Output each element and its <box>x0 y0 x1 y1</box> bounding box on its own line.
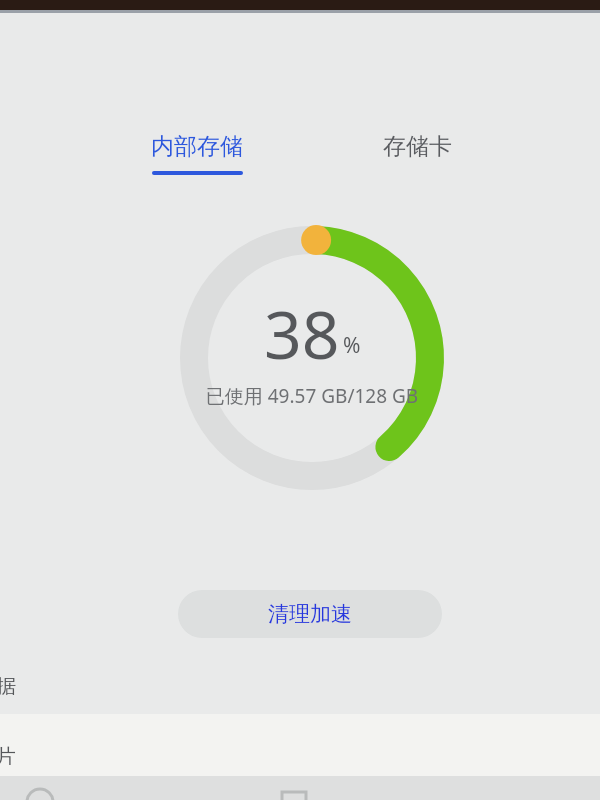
staticText: 存储卡 <box>383 132 452 161</box>
button[interactable]: 清理加速 <box>178 590 442 638</box>
staticText: 已使用 49.57 GB/128 GB <box>198 383 426 409</box>
staticText: 内部存储 <box>151 132 243 161</box>
button[interactable]: 内部存储 <box>132 132 262 182</box>
staticText: 片 <box>0 744 16 769</box>
staticText: 据 <box>0 674 16 699</box>
staticText: % <box>343 331 361 360</box>
staticText: 38 <box>264 288 340 368</box>
other: Navigation bar <box>0 776 600 800</box>
button[interactable]: 存储卡 <box>362 132 472 176</box>
staticText: 清理加速 <box>268 601 352 627</box>
